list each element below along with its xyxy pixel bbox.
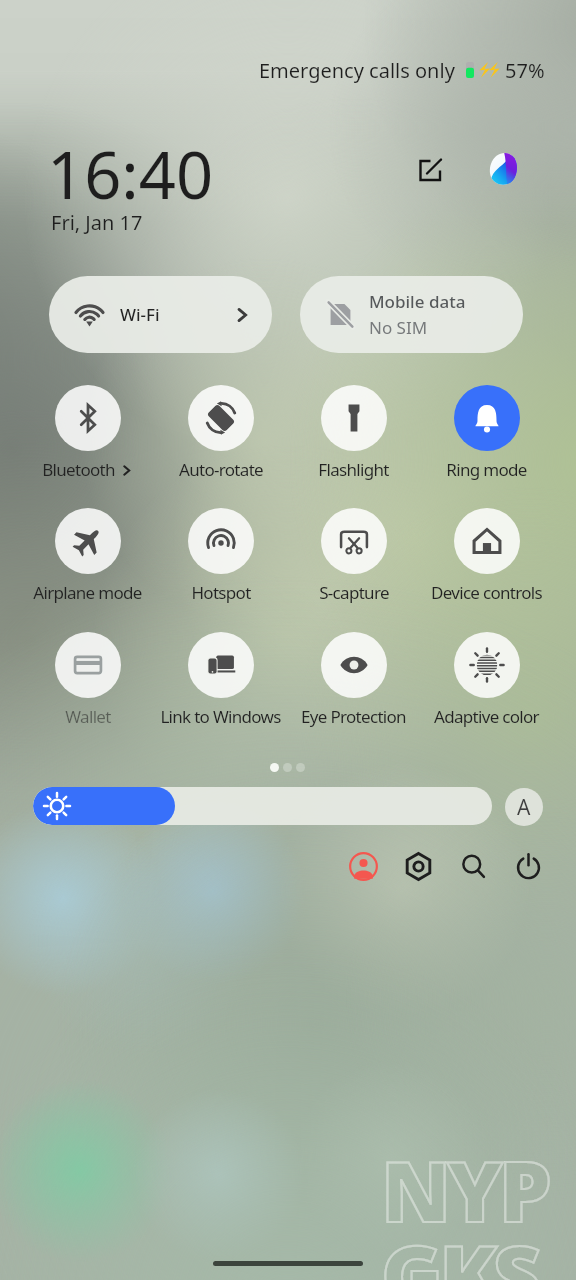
staticText: Emergency calls only bbox=[259, 57, 455, 84]
staticText: 57% bbox=[505, 57, 545, 84]
button[interactable]: Wallet bbox=[21, 632, 154, 728]
staticText: Airplane mode bbox=[33, 581, 142, 604]
staticText: Ring mode bbox=[446, 458, 527, 481]
button[interactable]: Auto brightness bbox=[505, 788, 543, 826]
button[interactable]: Galaxy AI bbox=[480, 146, 526, 192]
staticText: Wi-Fi bbox=[120, 303, 160, 326]
staticText: Wallet bbox=[65, 705, 111, 728]
button[interactable]: S-capture bbox=[287, 508, 420, 604]
button[interactable]: Brightness bbox=[33, 787, 492, 825]
staticText: Device controls bbox=[431, 581, 542, 604]
staticText: Eye Protection bbox=[301, 705, 406, 728]
staticText: A bbox=[517, 793, 531, 822]
button[interactable]: Mobile data bbox=[300, 276, 523, 353]
staticText: Fri, Jan 17 bbox=[51, 209, 143, 236]
button[interactable]: Airplane mode bbox=[21, 508, 154, 604]
button[interactable]: Adaptive color bbox=[420, 632, 553, 728]
button[interactable]: Link to Windows bbox=[154, 632, 287, 728]
staticText: Auto-rotate bbox=[179, 458, 263, 481]
staticText: No SIM bbox=[369, 316, 428, 339]
staticText: Flashlight bbox=[318, 458, 389, 481]
staticText: Mobile data bbox=[369, 290, 466, 313]
button[interactable]: Settings bbox=[398, 846, 438, 886]
button[interactable]: Auto-rotate bbox=[154, 385, 287, 481]
staticText: GKS bbox=[381, 1216, 538, 1280]
button[interactable]: Flashlight bbox=[287, 385, 420, 481]
staticText: Hotspot bbox=[191, 581, 251, 604]
staticText: S-capture bbox=[319, 581, 389, 604]
button[interactable]: Power bbox=[508, 846, 548, 886]
button[interactable]: Eye Protection bbox=[287, 632, 420, 728]
staticText: 16:40 bbox=[47, 130, 214, 219]
button[interactable]: Search bbox=[453, 846, 493, 886]
button[interactable]: Ring mode bbox=[420, 385, 553, 481]
staticText: NYP bbox=[381, 1132, 548, 1246]
button[interactable]: Bluetooth bbox=[21, 385, 154, 481]
button[interactable]: Wi-Fi bbox=[49, 276, 272, 353]
staticText: Bluetooth bbox=[42, 458, 115, 481]
button[interactable]: Hotspot bbox=[154, 508, 287, 604]
button[interactable]: Edit quick settings bbox=[409, 148, 453, 192]
staticText: Link to Windows bbox=[160, 705, 281, 728]
button[interactable]: Device controls bbox=[420, 508, 553, 604]
staticText: Adaptive color bbox=[434, 705, 539, 728]
button[interactable]: Profile bbox=[343, 846, 383, 886]
